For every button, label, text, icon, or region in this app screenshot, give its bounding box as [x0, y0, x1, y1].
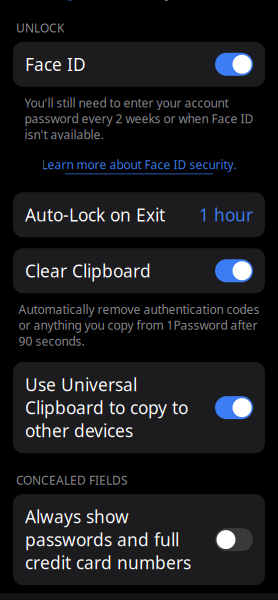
staticText: Face ID	[25, 53, 86, 76]
button[interactable]: Always show passwords and full credit ca…	[13, 494, 265, 585]
staticText: 1 hour	[199, 203, 253, 226]
staticText: You'll still need to enter your account …	[24, 95, 253, 143]
staticText: CONCEALED FIELDS	[16, 472, 128, 488]
staticText: Security	[104, 0, 173, 1]
staticText: Clear Clipboard	[25, 259, 151, 282]
button[interactable]: ‹	[8, 0, 84, 11]
staticText: Always show passwords and full credit ca…	[25, 505, 191, 574]
button[interactable]: Clear Clipboard	[13, 248, 265, 293]
staticText: Use Universal Clipboard to copy to other…	[25, 373, 188, 442]
staticText: Automatically remove authentication code…	[18, 301, 259, 349]
button[interactable]: Learn more about Face ID security.	[25, 157, 252, 174]
button[interactable]: Use Universal Clipboard to copy to other…	[13, 362, 265, 453]
button[interactable]: Auto-Lock on Exit	[13, 192, 265, 237]
button[interactable]: Face ID	[13, 42, 265, 87]
staticText: Learn more about Face ID security.	[41, 157, 236, 172]
staticText: Auto-Lock on Exit	[25, 203, 165, 226]
staticText: Settings	[18, 0, 84, 1]
staticText: UNLOCK	[16, 20, 64, 36]
